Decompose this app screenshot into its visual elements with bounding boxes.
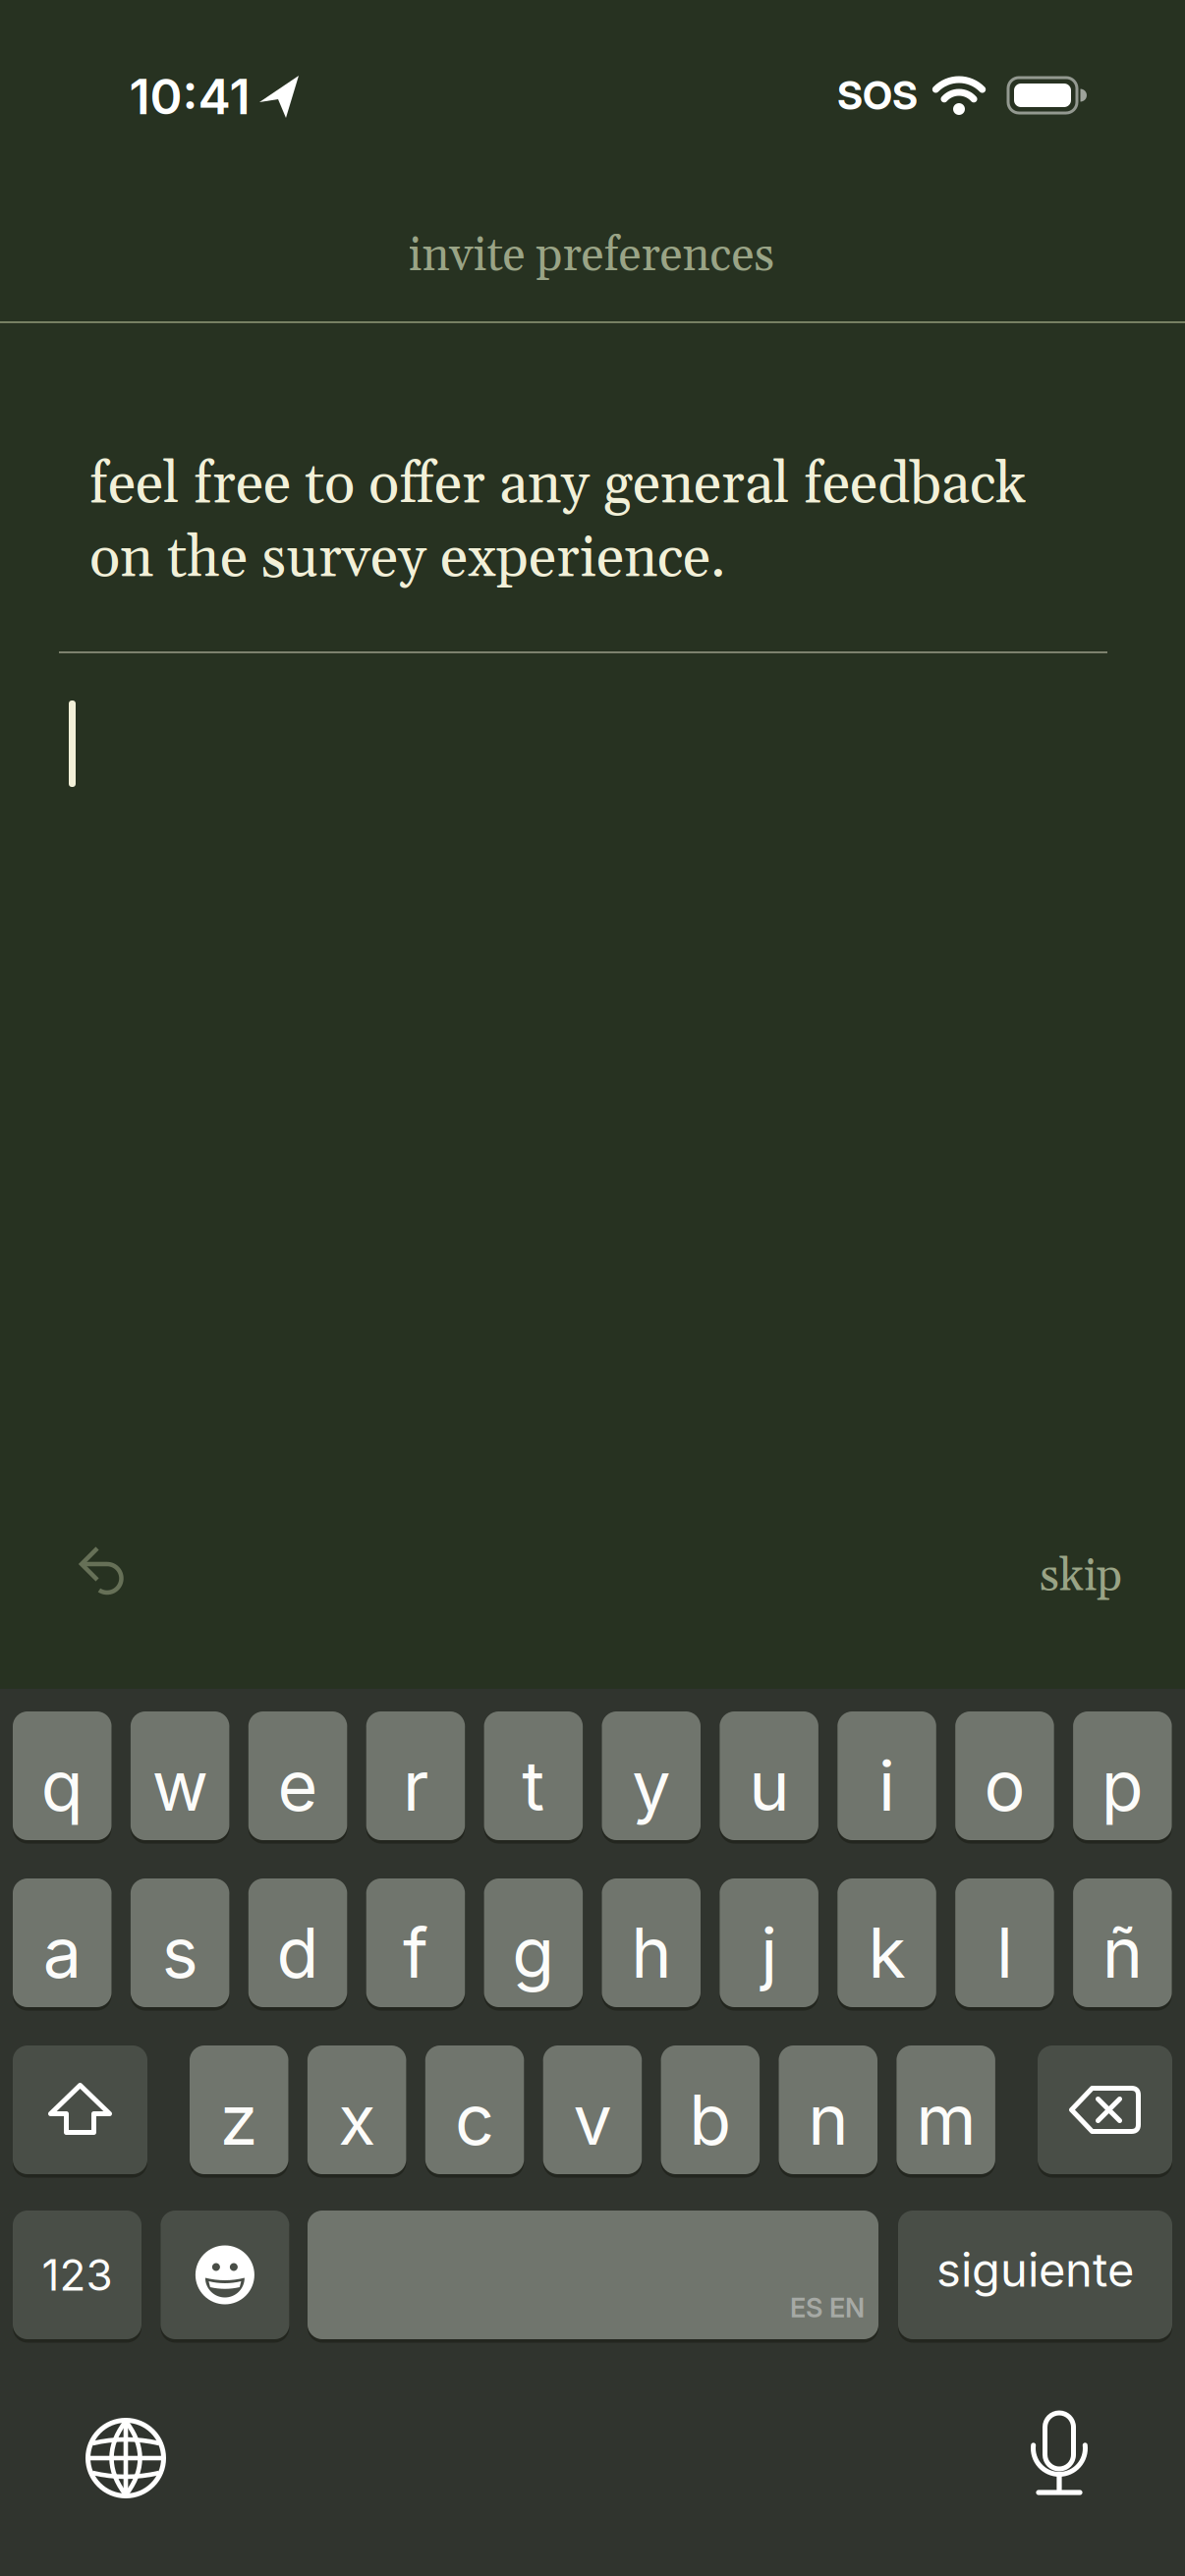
staticText: a <box>43 1911 81 1994</box>
staticText: o <box>984 1744 1025 1827</box>
button[interactable]: a <box>13 1878 112 2007</box>
staticText: invite preferences <box>408 227 775 286</box>
button[interactable]: y <box>602 1711 701 1840</box>
button[interactable]: b <box>661 2045 760 2174</box>
staticText: k <box>868 1911 906 1994</box>
button[interactable]: x <box>307 2045 406 2174</box>
staticText: g <box>512 1911 555 1994</box>
button[interactable]: 123 <box>13 2211 141 2339</box>
staticText: l <box>996 1911 1013 1994</box>
button[interactable]: n <box>779 2045 877 2174</box>
staticText: c <box>455 2078 494 2161</box>
staticText: r <box>403 1744 428 1827</box>
button[interactable]: c <box>425 2045 524 2174</box>
button[interactable] <box>84 2416 168 2500</box>
staticText: n <box>808 2078 848 2161</box>
staticText: d <box>277 1911 319 1994</box>
staticText: s <box>162 1911 198 1994</box>
button[interactable]: q <box>13 1711 112 1840</box>
staticText: SOS <box>837 72 918 119</box>
button[interactable]: i <box>837 1711 936 1840</box>
button[interactable]: k <box>837 1878 936 2007</box>
button[interactable]: j <box>720 1878 818 2007</box>
staticText: ES EN <box>790 2292 865 2324</box>
button[interactable]: e <box>248 1711 347 1840</box>
button[interactable]: r <box>366 1711 465 1840</box>
button[interactable] <box>308 2211 878 2339</box>
button[interactable]: w <box>131 1711 229 1840</box>
staticText: t <box>522 1744 545 1827</box>
button[interactable]: siguiente <box>898 2211 1172 2339</box>
staticText: 10:41 <box>129 67 250 126</box>
button[interactable] <box>67 1534 138 1604</box>
staticText: skip <box>1040 1548 1122 1606</box>
staticText: y <box>632 1744 670 1827</box>
button[interactable]: m <box>897 2045 995 2174</box>
staticText: b <box>689 2078 731 2161</box>
staticText: f <box>403 1911 428 1994</box>
button[interactable]: l <box>955 1878 1054 2007</box>
button[interactable]: p <box>1073 1711 1172 1840</box>
staticText: siguiente <box>936 2242 1134 2298</box>
button[interactable] <box>1038 2045 1172 2174</box>
button[interactable]: s <box>131 1878 229 2007</box>
button[interactable]: ñ <box>1073 1878 1172 2007</box>
staticText: 123 <box>42 2249 113 2301</box>
button[interactable]: g <box>484 1878 583 2007</box>
button[interactable]: t <box>484 1711 583 1840</box>
button[interactable]: o <box>955 1711 1054 1840</box>
staticText: i <box>879 1744 895 1827</box>
button[interactable] <box>1029 2410 1090 2498</box>
button[interactable]: v <box>543 2045 642 2174</box>
staticText: z <box>220 2078 258 2161</box>
staticText: x <box>338 2078 375 2161</box>
staticText: j <box>761 1911 777 1994</box>
staticText: ñ <box>1102 1911 1143 1994</box>
staticText: p <box>1101 1744 1144 1827</box>
button[interactable]: skip <box>1040 1548 1122 1606</box>
button[interactable] <box>13 2045 147 2174</box>
button[interactable]: f <box>366 1878 465 2007</box>
staticText: m <box>916 2078 976 2161</box>
staticText: v <box>573 2078 612 2161</box>
button[interactable]: h <box>602 1878 701 2007</box>
staticText: h <box>631 1911 671 1994</box>
staticText: q <box>41 1744 83 1827</box>
staticText: e <box>278 1744 318 1827</box>
staticText: u <box>749 1744 789 1827</box>
button[interactable]: u <box>720 1711 818 1840</box>
staticText: feel free to offer any general feedback <box>89 449 1026 521</box>
button[interactable] <box>161 2211 289 2339</box>
button[interactable]: d <box>248 1878 347 2007</box>
button[interactable]: z <box>190 2045 288 2174</box>
staticText: on the survey experience. <box>89 523 726 595</box>
staticText: w <box>152 1744 208 1827</box>
